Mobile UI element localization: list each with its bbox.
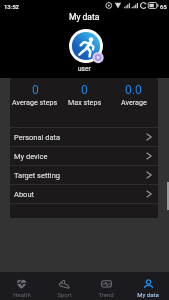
staticText: Average (121, 98, 147, 106)
staticText: Max steps (68, 98, 102, 106)
button[interactable]: Target setting (10, 166, 158, 184)
staticText: Average steps (12, 98, 58, 106)
staticText: 0 (81, 83, 88, 97)
button[interactable]: Personal data (10, 128, 158, 146)
button[interactable]: Health (0, 272, 43, 300)
button[interactable]: Trend (85, 272, 127, 300)
staticText: My data (69, 12, 100, 22)
staticText: 65 (160, 3, 167, 10)
staticText: 13:52 (4, 3, 19, 10)
staticText: Health (13, 291, 31, 298)
staticText: My data (137, 291, 159, 298)
staticText: user (78, 65, 91, 73)
staticText: My device (14, 152, 48, 161)
staticText: 0.0 (125, 83, 142, 97)
staticText: Sport (57, 291, 72, 298)
staticText: Target setting (14, 171, 61, 180)
button[interactable]: Sport (43, 272, 85, 300)
staticText: 0 (32, 83, 39, 97)
button[interactable]: About (10, 185, 158, 203)
staticText: Trend (98, 291, 114, 298)
staticText: About (14, 190, 34, 199)
button[interactable]: My device (10, 147, 158, 165)
staticText: Personal data (14, 133, 61, 142)
button[interactable]: My data (127, 272, 169, 300)
